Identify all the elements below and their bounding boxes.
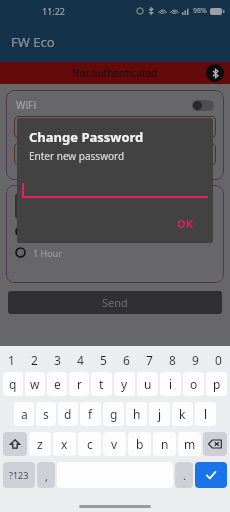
button[interactable]: 5 (92, 350, 115, 369)
button[interactable]: g (103, 402, 124, 426)
staticText: g (110, 406, 118, 422)
staticText: OK (177, 216, 194, 231)
button[interactable]: 0 (207, 350, 230, 369)
button[interactable]: h (126, 402, 147, 426)
staticText: WiFi (16, 98, 37, 112)
button[interactable]: f (80, 402, 101, 426)
staticText: z (37, 436, 43, 452)
staticText: Send (102, 295, 128, 310)
staticText: Not authenticated (72, 66, 158, 80)
staticText: Enter new password (29, 149, 125, 163)
button[interactable]: b (128, 432, 151, 456)
staticText: x (61, 436, 68, 452)
button[interactable]: 6 (115, 350, 138, 369)
staticText: 5 (100, 352, 107, 368)
staticText: n (161, 436, 169, 452)
staticText: k (179, 406, 186, 422)
staticText: 1 (8, 352, 15, 368)
staticText: o (190, 376, 198, 392)
staticText: d (64, 406, 72, 422)
button[interactable]: m (178, 432, 201, 456)
staticText: j (158, 406, 162, 422)
button[interactable]: s (36, 402, 56, 426)
button[interactable]: WiFi toggle (192, 100, 214, 111)
button[interactable]: Period (175, 462, 193, 488)
button[interactable]: 3 (46, 350, 69, 369)
button[interactable]: y (114, 372, 135, 396)
staticText: 2 (31, 352, 38, 368)
button[interactable]: q (3, 372, 23, 396)
button[interactable]: k (172, 402, 193, 426)
button[interactable]: ?123 (3, 462, 35, 488)
staticText: r (77, 376, 82, 392)
button[interactable]: n (153, 432, 176, 456)
staticText: v (111, 436, 118, 452)
button[interactable]: Shift (3, 432, 27, 456)
staticText: e (54, 376, 61, 392)
button[interactable]: w (25, 372, 45, 396)
staticText: w (30, 376, 40, 392)
button[interactable]: Comma (37, 462, 55, 488)
staticText: a (21, 406, 28, 422)
button[interactable]: d (58, 402, 78, 426)
button[interactable]: t (91, 372, 112, 396)
button[interactable]: OK (172, 214, 199, 233)
button[interactable]: i (160, 372, 181, 396)
staticText: p (213, 376, 221, 392)
staticText: FW Eco (11, 33, 55, 51)
button[interactable]: 1 (0, 350, 23, 369)
staticText: 11:22 (42, 5, 66, 17)
staticText: . (183, 468, 186, 483)
button[interactable]: x (53, 432, 76, 456)
staticText: , (45, 469, 48, 484)
button[interactable]: z (29, 432, 51, 456)
staticText: y (121, 376, 128, 392)
staticText: s (43, 406, 49, 422)
button[interactable]: Bluetooth (206, 64, 224, 82)
staticText: 98% (193, 6, 207, 16)
button[interactable]: 45 Minute (15, 223, 224, 240)
button[interactable]: v (103, 432, 126, 456)
staticText: c (87, 436, 93, 452)
staticText: 7 (146, 352, 153, 368)
staticText: m (184, 436, 196, 452)
staticText: 8 (169, 352, 176, 368)
button[interactable]: u (137, 372, 158, 396)
staticText: u (144, 376, 152, 392)
staticText: f (88, 406, 93, 422)
button[interactable]: 4 (69, 350, 92, 369)
staticText: i (169, 376, 173, 392)
button[interactable]: p (206, 372, 227, 396)
staticText: t (99, 376, 104, 392)
staticText: 9 (192, 352, 199, 368)
button[interactable]: o (183, 372, 204, 396)
button[interactable]: r (69, 372, 89, 396)
staticText: ?123 (9, 469, 29, 481)
button[interactable]: 8 (161, 350, 184, 369)
staticText: l (204, 406, 208, 422)
button[interactable]: 9 (184, 350, 207, 369)
button[interactable]: 1 Hour (15, 244, 224, 261)
staticText: b (136, 436, 144, 452)
staticText: 6 (123, 352, 130, 368)
staticText: 4 (77, 352, 84, 368)
button[interactable]: l (195, 402, 216, 426)
staticText: h (133, 406, 141, 422)
button[interactable]: c (78, 432, 101, 456)
button[interactable]: Send (8, 291, 222, 314)
staticText: 1 Hour (33, 247, 62, 259)
button[interactable]: e (47, 372, 67, 396)
button[interactable]: Enter (195, 462, 227, 488)
staticText: q (9, 376, 17, 392)
button[interactable]: 7 (138, 350, 161, 369)
button[interactable]: 2 (23, 350, 46, 369)
staticText: 3 (54, 352, 61, 368)
button[interactable]: Backspace (203, 432, 227, 456)
staticText: Change Password (29, 128, 144, 146)
button[interactable]: a (14, 402, 34, 426)
button[interactable]: j (149, 402, 170, 426)
staticText: 0 (215, 352, 222, 368)
